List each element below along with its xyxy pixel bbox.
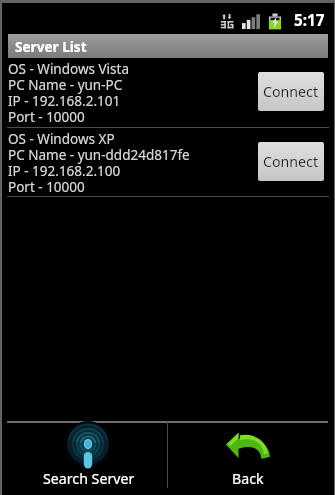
- staticText: Connect: [263, 152, 319, 171]
- staticText: PC Name - yun-PC: [8, 76, 123, 94]
- staticText: IP - 192.168.2.100: [8, 162, 121, 180]
- staticText: Search Server: [43, 469, 135, 488]
- staticText: Port - 10000: [8, 178, 85, 196]
- staticText: 5:17: [294, 10, 325, 31]
- staticText: Port - 10000: [8, 108, 85, 126]
- staticText: OS - Windows XP: [8, 130, 115, 148]
- button[interactable]: Connect: [258, 72, 324, 111]
- staticText: IP - 192.168.2.101: [8, 92, 121, 110]
- staticText: Back: [232, 469, 264, 488]
- button[interactable]: OS - Windows XP: [2, 128, 334, 196]
- button[interactable]: Back: [168, 422, 330, 488]
- staticText: Connect: [263, 82, 319, 101]
- staticText: Server List: [15, 37, 87, 56]
- staticText: OS - Windows Vista: [8, 60, 129, 78]
- button[interactable]: Connect: [258, 142, 324, 181]
- button[interactable]: Search Server: [3, 422, 167, 488]
- staticText: PC Name - yun-ddd24d817fe: [8, 146, 190, 164]
- button[interactable]: OS - Windows Vista: [2, 58, 334, 127]
